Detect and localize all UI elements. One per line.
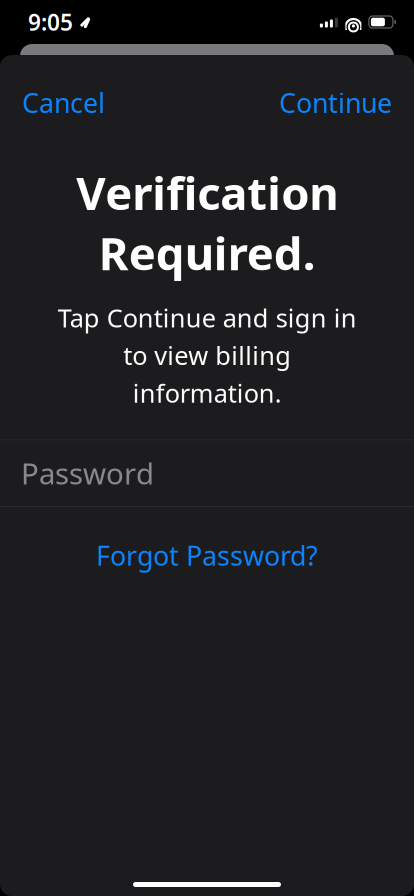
button[interactable]: Continue (275, 75, 396, 130)
staticText: 9:05 (28, 7, 73, 37)
staticText: Forgot Password? (96, 538, 318, 573)
staticText: Password (21, 454, 154, 493)
button[interactable]: Cancel (18, 75, 109, 130)
staticText: Tap Continue and sign in to view billing… (57, 301, 356, 410)
button[interactable]: Forgot Password? (80, 528, 334, 583)
staticText: Continue (279, 85, 392, 120)
staticText: Cancel (22, 85, 105, 120)
button[interactable]: Password (0, 440, 414, 506)
staticText: Verification Required. (76, 162, 338, 283)
